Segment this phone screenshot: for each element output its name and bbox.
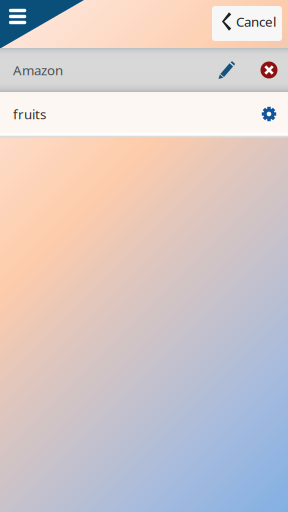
staticText: Cancel	[236, 13, 276, 30]
button[interactable]: Cancel	[212, 6, 282, 41]
staticText: fruits	[13, 105, 46, 123]
button[interactable]: Edit Amazon	[212, 55, 242, 85]
staticText: Amazon	[13, 61, 63, 79]
button[interactable]: Delete Amazon	[254, 55, 284, 85]
button[interactable]: fruits	[0, 92, 288, 136]
button[interactable]: fruits settings	[254, 99, 284, 129]
button[interactable]: Amazon	[0, 48, 288, 92]
button[interactable]: Menu	[0, 0, 35, 33]
